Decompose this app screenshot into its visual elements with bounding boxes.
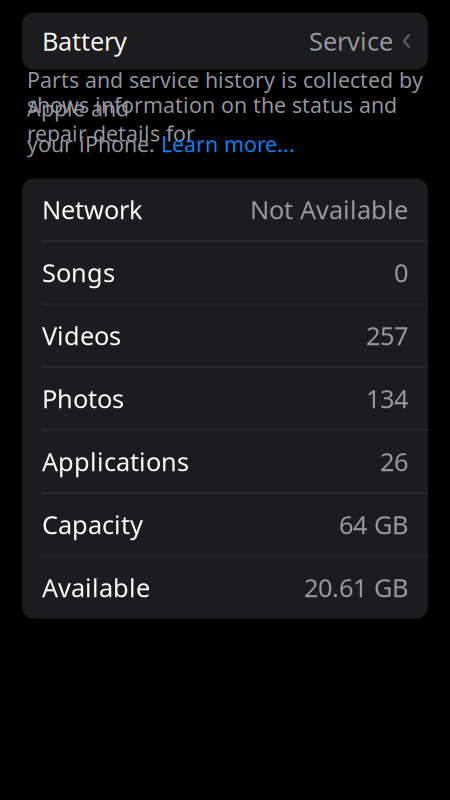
staticText: shows information on the status and repa… [27,91,397,147]
staticText: 0 [394,256,408,289]
staticText: Applications [42,445,189,478]
staticText: Network [42,193,143,226]
staticText: Battery [42,24,127,58]
staticText: Parts and service history is collected b… [27,66,423,122]
button[interactable]: Battery [22,12,428,69]
staticText: Service [309,24,393,58]
button[interactable]: Songs [22,241,428,303]
button[interactable]: Learn more... [161,130,295,158]
button[interactable]: Available [22,556,428,618]
staticText: Videos [42,319,121,352]
staticText: Capacity [42,508,143,541]
button[interactable]: Applications [22,430,428,492]
staticText: 20.61 GB [304,571,408,604]
button[interactable]: Videos [22,304,428,366]
staticText: Songs [42,256,115,289]
staticText: Not Available [250,193,408,226]
staticText: Available [42,571,150,604]
staticText: 257 [366,319,408,352]
staticText: your iPhone. [27,130,161,158]
button[interactable]: Photos [22,367,428,429]
staticText: Photos [42,382,124,415]
button[interactable]: Capacity [22,493,428,555]
staticText: 134 [366,382,408,415]
staticText: 26 [380,445,408,478]
button[interactable]: Network [22,178,428,240]
staticText: Learn more... [161,130,295,158]
staticText: 64 GB [339,508,408,541]
